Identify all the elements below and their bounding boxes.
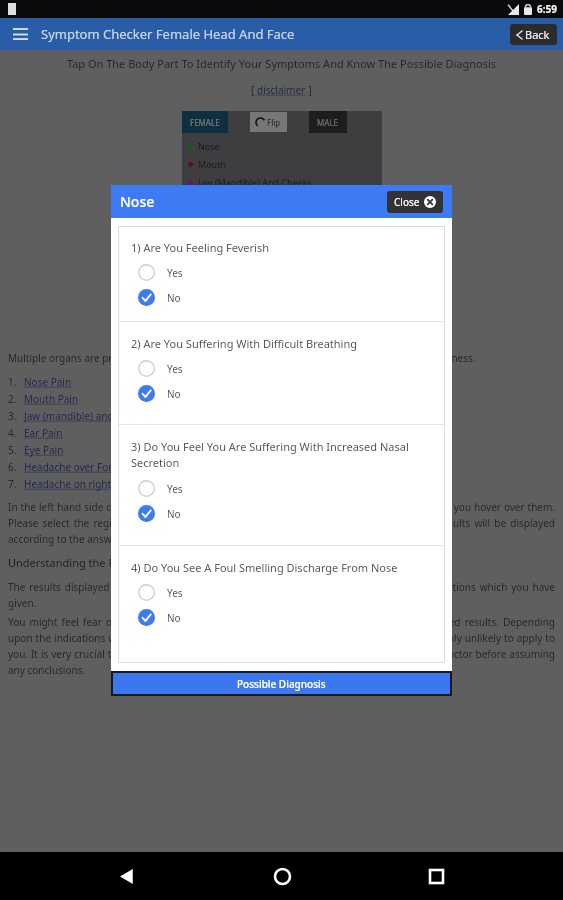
button[interactable]: Yes: [131, 479, 191, 498]
staticText: Nose: [120, 192, 155, 211]
staticText: Understanding the Results: [8, 555, 146, 570]
staticText: No: [167, 387, 181, 401]
staticText: You might feel fear or become stressed b…: [8, 615, 555, 676]
button[interactable]: Back: [510, 24, 557, 45]
button[interactable]: Back: [99, 852, 155, 900]
staticText: No: [167, 507, 181, 521]
staticText: Nose: [198, 140, 220, 152]
staticText: Yes: [167, 482, 183, 496]
button[interactable]: Nose: [182, 137, 382, 155]
button[interactable]: Home: [254, 852, 310, 900]
staticText: FEMALE: [190, 117, 220, 128]
button[interactable]: Yes: [131, 359, 191, 378]
staticText: 2) Are You Suffering With Difficult Brea…: [131, 336, 358, 351]
staticText: 3) Do You Feel You Are Suffering With In…: [131, 439, 435, 471]
staticText: ]: [306, 83, 312, 97]
staticText: 2.: [8, 392, 24, 406]
staticText: 4.: [8, 426, 24, 440]
button[interactable]: Possible Diagnosis: [113, 673, 450, 694]
button[interactable]: Ear Pain: [24, 426, 63, 440]
staticText: 4) Do You See A Foul Smelling Discharge …: [131, 560, 398, 575]
staticText: Possible Diagnosis: [237, 677, 326, 691]
staticText: Tap On The Body Part To Identify Your Sy…: [0, 56, 563, 71]
staticText: 5.: [8, 443, 24, 457]
staticText: Yes: [167, 362, 183, 376]
button[interactable]: Yes: [131, 263, 191, 282]
staticText: The results displayed after providing th…: [8, 580, 555, 609]
staticText: MALE: [317, 117, 339, 128]
staticText: Yes: [167, 586, 183, 600]
button[interactable]: FEMALE: [182, 111, 228, 133]
staticText: 7.: [8, 477, 24, 491]
button[interactable]: MALE: [309, 111, 347, 133]
button[interactable]: Close: [387, 191, 443, 213]
button[interactable]: Headache on right side: [24, 477, 133, 491]
staticText: 6.: [8, 460, 24, 474]
staticText: No: [167, 291, 181, 305]
button[interactable]: No: [131, 608, 189, 627]
button[interactable]: No: [131, 504, 189, 523]
button[interactable]: Jaw (Mandible) And Cheeks: [182, 173, 382, 191]
staticText: 3.: [8, 409, 24, 423]
button[interactable]: No: [131, 384, 189, 403]
button[interactable]: No: [131, 288, 189, 307]
staticText: 6:59: [537, 2, 557, 16]
button[interactable]: Nose Pain: [24, 375, 72, 389]
staticText: Yes: [167, 266, 183, 280]
staticText: 1) Are You Feeling Feverish: [131, 240, 270, 255]
button[interactable]: Yes: [131, 583, 191, 602]
button[interactable]: Mouth Pain: [24, 392, 79, 406]
button[interactable]: disclaimer: [257, 83, 306, 97]
staticText: Flip: [267, 117, 281, 128]
staticText: 1.: [8, 375, 24, 389]
staticText: No: [167, 611, 181, 625]
staticText: Mouth: [198, 158, 226, 170]
staticText: [: [251, 83, 257, 97]
staticText: Back: [525, 27, 550, 42]
button[interactable]: Open navigation menu: [6, 20, 34, 48]
staticText: Symptom Checker Female Head And Face: [41, 25, 295, 43]
staticText: Multiple organs are present in the head …: [8, 351, 476, 365]
button[interactable]: Mouth: [182, 155, 382, 173]
button[interactable]: Recent apps: [408, 852, 464, 900]
staticText: Jaw (Mandible) And Cheeks: [198, 176, 312, 188]
staticText: In the left hand side of the body map yo…: [8, 500, 555, 545]
staticText: Close: [394, 195, 420, 209]
button[interactable]: Flip: [250, 112, 287, 132]
button[interactable]: Headache over Forehead: [24, 460, 142, 474]
button[interactable]: Jaw (mandible) and cheeks Pain: [24, 409, 172, 423]
button[interactable]: Eye Pain: [24, 443, 64, 457]
